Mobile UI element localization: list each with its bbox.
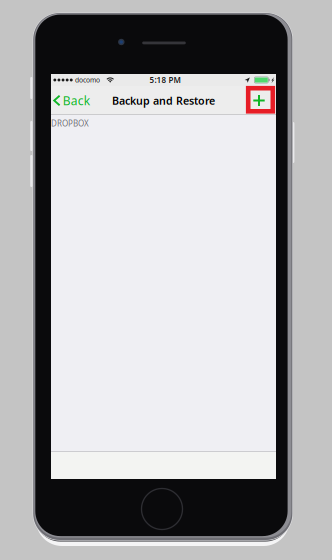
staticText: 5:18 PM xyxy=(149,75,180,85)
staticText: docomo xyxy=(75,76,100,84)
staticText: Backup and Restore xyxy=(112,93,215,108)
staticText: DROPBOX xyxy=(51,118,89,129)
button[interactable]: Add backup xyxy=(248,89,270,111)
button[interactable]: Back xyxy=(51,86,103,115)
staticText: Back xyxy=(63,92,90,108)
